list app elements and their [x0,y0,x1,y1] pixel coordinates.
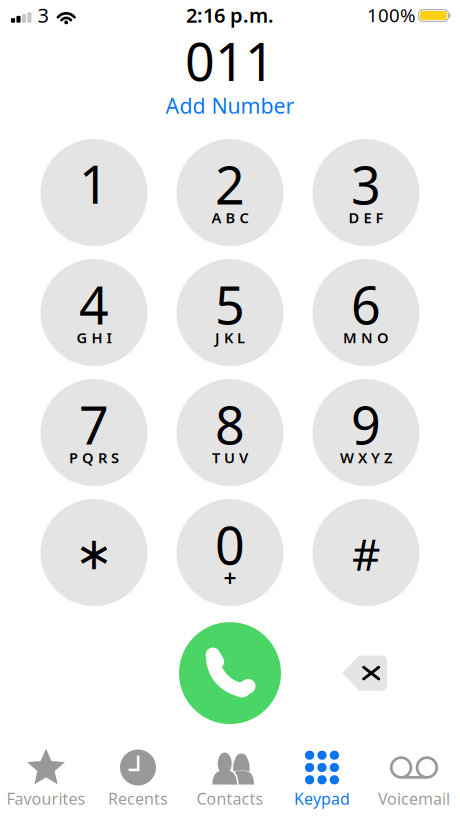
button[interactable]: 7 [40,379,147,486]
staticText: + [223,563,236,593]
staticText: M N O [343,328,389,347]
staticText: Contacts [196,788,263,809]
button[interactable]: 5 [176,259,283,366]
staticText: Favourites [6,788,85,809]
button[interactable]: 4 [40,259,147,366]
button[interactable]: 2 [176,139,283,246]
staticText: 3 [351,150,381,219]
staticText: 1 [79,149,109,218]
button[interactable]: Favourites [0,749,92,817]
staticText: G H I [76,328,111,347]
staticText: 4 [79,270,109,339]
staticText: Add Number [165,91,294,120]
button[interactable]: # [312,499,419,606]
staticText: 8 [215,390,245,459]
staticText: Voicemail [378,788,450,809]
button[interactable]: 0 [176,499,283,606]
staticText: 7 [79,390,109,459]
button[interactable]: Voicemail [368,749,460,817]
staticText: P Q R S [69,448,119,467]
button[interactable]: 9 [312,379,419,486]
staticText: 6 [351,270,381,339]
staticText: Recents [108,788,168,809]
button[interactable]: Call [179,622,281,724]
staticText: J K L [215,328,245,347]
staticText: 3 [37,2,48,28]
staticText: T U V [212,448,248,467]
button[interactable]: Keypad [276,749,368,817]
button[interactable]: 1 [40,139,147,246]
staticText: 0 [215,510,245,579]
staticText: A B C [211,208,248,227]
button[interactable]: 3 [312,139,419,246]
button[interactable]: 6 [312,259,419,366]
staticText: 5 [215,270,245,339]
staticText: ∗ [75,528,113,579]
staticText: 2:16 p.m. [186,2,274,28]
button[interactable]: Recents [92,749,184,817]
button[interactable]: Add Number [153,86,306,124]
staticText: 011 [185,26,275,95]
staticText: 9 [351,390,381,459]
staticText: 2 [215,150,245,219]
button[interactable]: Delete [328,643,401,703]
staticText: D E F [348,208,383,227]
staticText: W X Y Z [340,448,392,467]
button[interactable]: 8 [176,379,283,486]
staticText: 100% [367,3,416,27]
button[interactable]: ∗ [40,499,147,606]
staticText: Keypad [294,788,350,809]
button[interactable]: Contacts [184,749,276,817]
staticText: # [352,524,380,583]
